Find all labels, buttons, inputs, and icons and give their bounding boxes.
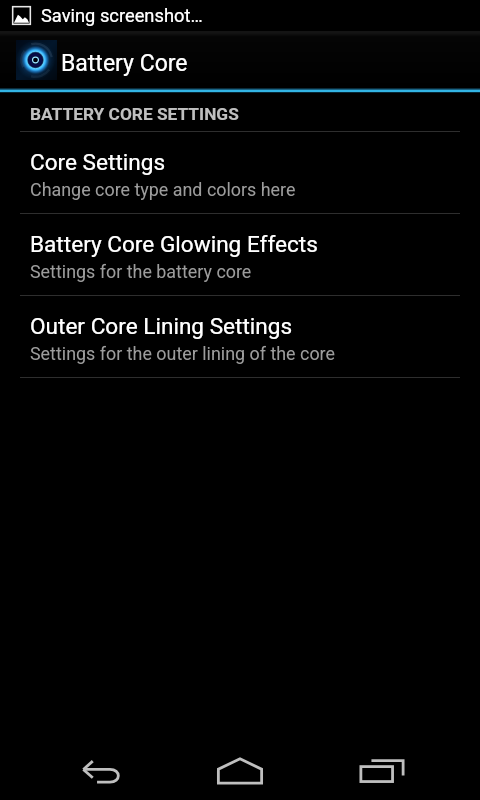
staticText: BATTERY CORE SETTINGS: [30, 104, 239, 124]
staticText: Settings for the outer lining of the cor…: [30, 343, 335, 364]
staticText: Battery Core: [61, 50, 188, 77]
button[interactable]: Recent apps: [334, 739, 430, 800]
staticText: Change core type and colors here: [30, 179, 296, 200]
staticText: Outer Core Lining Settings: [30, 313, 293, 339]
staticText: Core Settings: [30, 149, 166, 175]
staticText: Settings for the battery core: [30, 261, 252, 282]
button[interactable]: Core Settings: [0, 132, 480, 213]
staticText: Saving screenshot…: [41, 5, 203, 26]
button[interactable]: Outer Core Lining Settings: [0, 296, 480, 377]
staticText: Battery Core Glowing Effects: [30, 231, 318, 257]
button[interactable]: Battery Core Glowing Effects: [0, 214, 480, 295]
button[interactable]: Back: [52, 739, 148, 800]
button[interactable]: Home: [192, 739, 288, 800]
button[interactable]: Battery Core: [0, 31, 480, 88]
